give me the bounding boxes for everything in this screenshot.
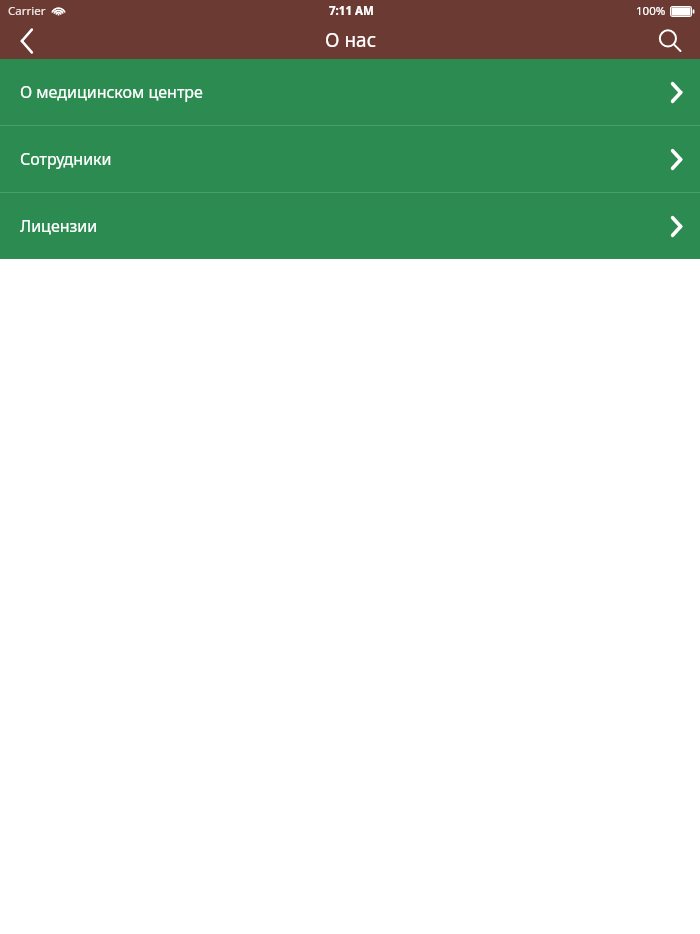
button[interactable]: Лицензии: [0, 193, 700, 259]
staticText: Лицензии: [20, 215, 98, 237]
staticText: О медицинском центре: [20, 81, 203, 103]
button[interactable]: О медицинском центре: [0, 59, 700, 125]
button[interactable]: Сотрудники: [0, 126, 700, 192]
staticText: 7:11 AM: [329, 3, 374, 19]
button[interactable]: Search: [646, 22, 700, 59]
staticText: О нас: [325, 27, 376, 53]
button[interactable]: Back: [0, 22, 54, 59]
staticText: 100%: [636, 3, 666, 19]
staticText: Сотрудники: [20, 148, 112, 170]
staticText: Carrier: [8, 3, 46, 19]
